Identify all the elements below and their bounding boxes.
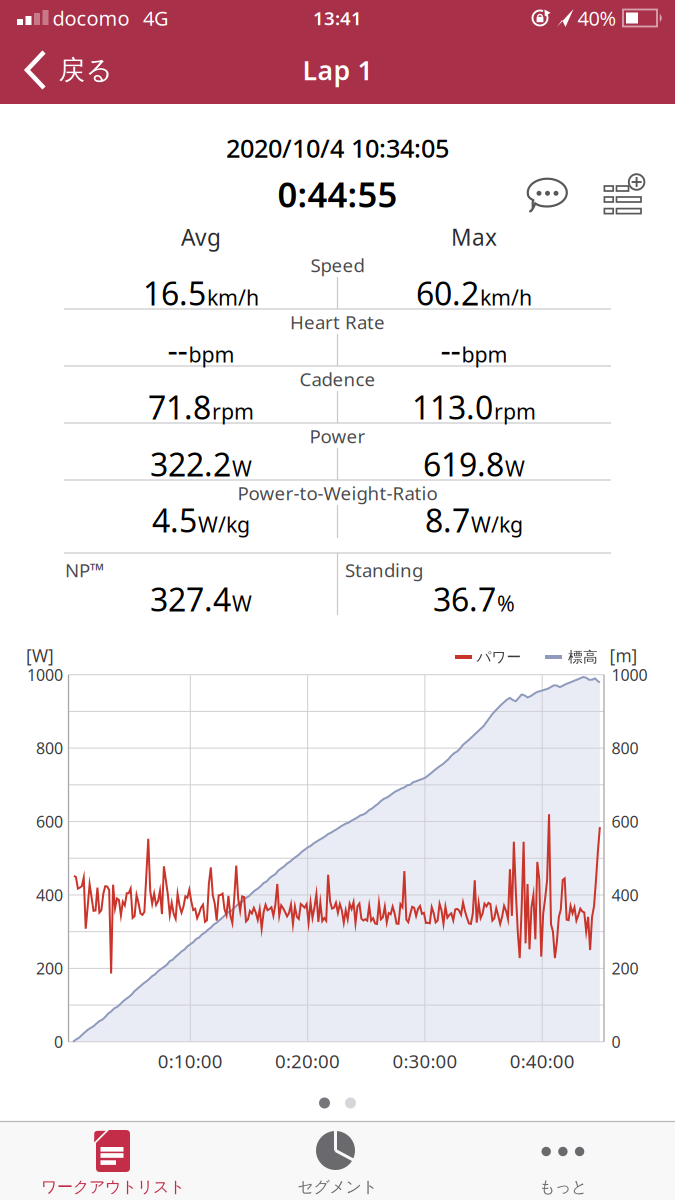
staticText: ワークアウトリスト — [41, 1177, 185, 1197]
staticText: 40% — [577, 5, 616, 31]
staticText: 200 — [611, 958, 638, 979]
staticText: % — [497, 589, 515, 617]
staticText: 619.8 — [423, 443, 504, 485]
staticText: [W] — [26, 644, 54, 667]
staticText: -- — [167, 329, 187, 371]
staticText: 標高 — [568, 648, 598, 666]
staticText: 400 — [36, 884, 63, 905]
staticText: Standing — [345, 558, 423, 582]
staticText: Speed — [310, 253, 364, 277]
staticText: 800 — [36, 737, 63, 759]
staticText: W — [232, 454, 252, 482]
staticText: 2020/10/4 10:34:05 — [226, 131, 449, 165]
staticText: docomo — [52, 5, 129, 31]
staticText: 322.2 — [150, 443, 231, 485]
staticText: 200 — [36, 958, 63, 979]
staticText: 0:40:00 — [510, 1049, 575, 1073]
staticText: 600 — [611, 811, 638, 832]
staticText: 0:30:00 — [392, 1049, 457, 1073]
staticText: 0:10:00 — [158, 1049, 223, 1073]
staticText: bpm — [188, 340, 234, 368]
staticText: 0:44:55 — [277, 171, 397, 217]
staticText: [m] — [609, 644, 637, 667]
staticText: Heart Rate — [290, 310, 385, 334]
staticText: 36.7 — [433, 578, 496, 620]
staticText: km/h — [480, 283, 532, 311]
staticText: NP™ — [65, 558, 104, 582]
button[interactable]: セグメント — [225, 1121, 450, 1200]
staticText: 0 — [54, 1031, 63, 1052]
staticText: 4G — [143, 5, 169, 31]
staticText: 8.7 — [425, 499, 470, 541]
button[interactable]: もっと — [450, 1121, 675, 1200]
staticText: 60.2 — [416, 272, 479, 314]
staticText: Lap 1 — [302, 52, 372, 88]
staticText: 16.5 — [143, 272, 206, 314]
staticText: 71.8 — [148, 386, 211, 428]
staticText: 327.4 — [150, 578, 231, 620]
staticText: 400 — [611, 884, 638, 905]
staticText: 13:41 — [313, 6, 362, 30]
staticText: 600 — [36, 811, 63, 832]
staticText: W — [232, 589, 252, 617]
staticText: Avg — [181, 222, 221, 252]
staticText: 1000 — [27, 664, 63, 685]
button[interactable]: Comments — [519, 168, 575, 218]
staticText: W — [505, 454, 525, 482]
staticText: 1000 — [611, 664, 647, 685]
staticText: km/h — [207, 283, 259, 311]
button[interactable]: 戻る — [6, 36, 121, 104]
staticText: もっと — [539, 1177, 587, 1197]
staticText: 113.0 — [412, 386, 493, 428]
staticText: パワー — [476, 648, 521, 666]
staticText: 0:20:00 — [275, 1049, 340, 1073]
staticText: W/kg — [471, 510, 523, 538]
staticText: W/kg — [198, 510, 250, 538]
staticText: bpm — [461, 340, 507, 368]
staticText: Power-to-Weight-Ratio — [237, 481, 437, 505]
staticText: rpm — [212, 397, 254, 425]
staticText: 4.5 — [152, 499, 197, 541]
staticText: セグメント — [297, 1177, 377, 1197]
staticText: Power — [309, 424, 365, 448]
staticText: rpm — [494, 397, 536, 425]
staticText: 戻る — [58, 54, 112, 86]
button[interactable]: ワークアウトリスト — [0, 1121, 225, 1200]
staticText: Max — [451, 222, 497, 252]
staticText: Cadence — [299, 367, 375, 391]
button[interactable]: Add lap details — [596, 171, 652, 221]
staticText: 800 — [611, 737, 638, 759]
staticText: -- — [440, 329, 460, 371]
staticText: 0 — [611, 1031, 620, 1052]
